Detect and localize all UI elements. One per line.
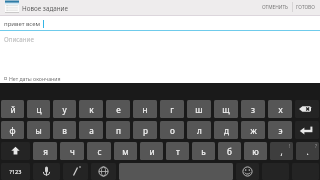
button[interactable]: б <box>218 142 241 160</box>
button[interactable]: п <box>106 121 130 139</box>
button[interactable]: , <box>270 142 293 160</box>
staticText: с <box>97 146 102 157</box>
button[interactable]: э <box>268 121 292 139</box>
button[interactable]: х <box>268 100 292 118</box>
staticText: з <box>251 104 255 115</box>
button[interactable]: ь <box>192 142 215 160</box>
staticText: л <box>197 125 202 136</box>
button[interactable]: ы <box>27 121 50 139</box>
button[interactable]: е <box>106 100 130 118</box>
button[interactable]: ч <box>60 142 84 160</box>
button[interactable]: щ <box>214 100 238 118</box>
staticText: р <box>143 125 148 136</box>
button[interactable]: т <box>166 142 189 160</box>
staticText: . <box>306 146 309 157</box>
button[interactable]: д <box>214 121 238 139</box>
button[interactable]: Emoji <box>236 163 259 180</box>
button[interactable]: Voice input <box>33 163 60 180</box>
button[interactable]: у <box>53 100 76 118</box>
staticText: о <box>170 125 175 136</box>
staticText: э <box>278 125 283 136</box>
staticText: н <box>142 104 148 115</box>
staticText: ь <box>201 146 206 157</box>
button[interactable]: я <box>33 142 57 160</box>
staticText: ж <box>250 125 257 136</box>
button[interactable]: р <box>133 121 157 139</box>
button[interactable]: з <box>241 100 265 118</box>
button[interactable]: и <box>140 142 163 160</box>
staticText: г <box>170 104 174 115</box>
button[interactable]: ю <box>244 142 267 160</box>
staticText: ОТМЕНИТЬ <box>262 4 289 11</box>
button[interactable]: а <box>79 121 103 139</box>
staticText: щ <box>222 104 230 115</box>
staticText: ?123 <box>9 168 22 176</box>
button[interactable]: Settings <box>63 163 88 180</box>
button[interactable]: Shift <box>1 142 30 160</box>
button[interactable]: о <box>160 121 184 139</box>
staticText: в <box>62 125 67 136</box>
staticText: а <box>89 125 94 136</box>
button[interactable]: л <box>187 121 211 139</box>
staticText: у <box>62 104 67 115</box>
staticText: п <box>116 125 121 136</box>
staticText: ! <box>289 143 291 149</box>
button[interactable]: Описание <box>0 32 320 45</box>
staticText: х <box>278 104 283 115</box>
staticText: Нет даты окончания <box>9 75 61 82</box>
button[interactable]: м <box>114 142 137 160</box>
staticText: е <box>116 104 121 115</box>
button[interactable]: Switch language <box>91 163 116 180</box>
staticText: я <box>43 146 48 157</box>
staticText: ч <box>70 146 75 157</box>
staticText: ы <box>35 125 42 136</box>
button[interactable]: . <box>296 142 319 160</box>
staticText: привет всем <box>4 20 41 28</box>
staticText: ф <box>9 125 16 136</box>
button[interactable]: ф <box>1 121 24 139</box>
staticText: Новое задание <box>22 4 68 13</box>
staticText: ? <box>315 143 317 149</box>
staticText: ю <box>252 146 259 157</box>
button[interactable]: Нет даты окончания <box>0 73 320 83</box>
button[interactable]: ?123 <box>1 163 30 180</box>
button[interactable]: с <box>87 142 111 160</box>
staticText: ш <box>195 104 203 115</box>
staticText: к <box>89 104 94 115</box>
staticText: м <box>122 146 129 157</box>
button[interactable]: н <box>133 100 157 118</box>
staticText: д <box>224 125 229 136</box>
button[interactable]: ГОТОВО <box>293 0 318 14</box>
staticText: и <box>149 146 155 157</box>
button[interactable]: привет всем <box>0 16 320 31</box>
button[interactable]: Новое задание <box>0 0 68 14</box>
staticText: ц <box>36 104 42 115</box>
button[interactable]: к <box>79 100 103 118</box>
button[interactable]: ш <box>187 100 211 118</box>
staticText: Описание <box>4 35 34 43</box>
staticText: б <box>227 146 232 157</box>
staticText: ГОТОВО <box>296 4 315 11</box>
button[interactable]: ОТМЕНИТЬ <box>259 0 292 14</box>
button[interactable]: ц <box>27 100 50 118</box>
staticText: й <box>10 104 16 115</box>
button[interactable]: в <box>53 121 76 139</box>
button[interactable]: Enter <box>295 121 319 139</box>
staticText: т <box>176 146 180 157</box>
button[interactable]: Backspace <box>295 100 319 118</box>
button[interactable]: й <box>1 100 24 118</box>
button[interactable]: ж <box>241 121 265 139</box>
button[interactable]: г <box>160 100 184 118</box>
staticText: , <box>280 146 283 157</box>
